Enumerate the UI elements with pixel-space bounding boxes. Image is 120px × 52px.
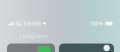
staticText: Freddie xyxy=(23,20,41,27)
button[interactable] xyxy=(7,43,55,52)
staticText: ♥ xyxy=(42,21,46,26)
staticText: 5G xyxy=(15,20,22,27)
staticText: 100% xyxy=(89,20,103,27)
staticText: Living room xyxy=(19,33,47,40)
button[interactable] xyxy=(59,43,114,52)
